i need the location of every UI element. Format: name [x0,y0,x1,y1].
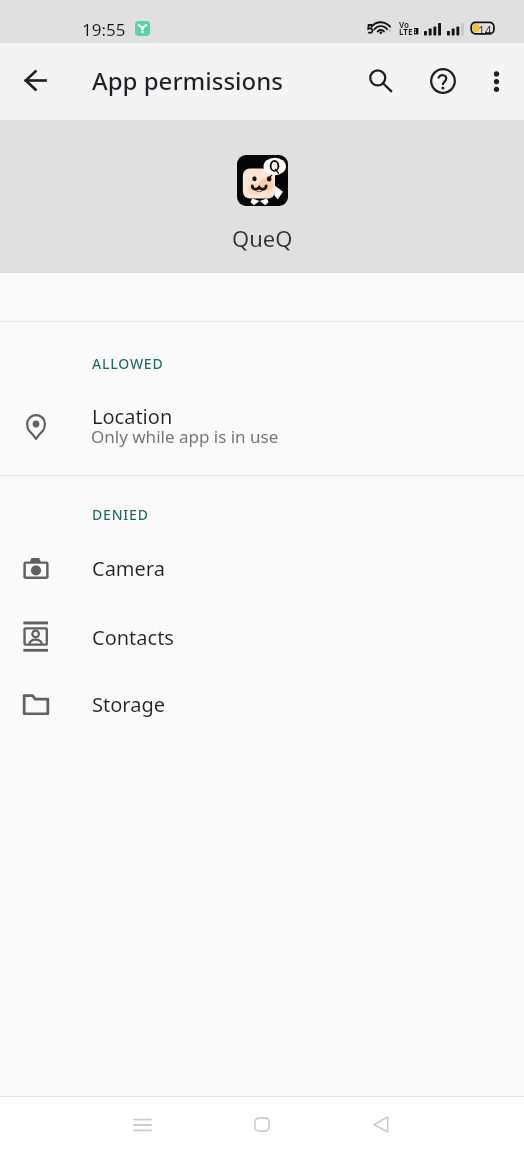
button[interactable]: Home [231,1097,293,1152]
button[interactable]: Storage [0,670,524,738]
staticText: QueQ [232,223,293,253]
staticText: ALLOWED [92,354,164,373]
button[interactable]: More options [470,54,523,107]
button[interactable]: Location [0,380,524,460]
staticText: DENIED [92,505,149,524]
staticText: Storage [92,691,165,718]
button[interactable]: Search [354,54,407,107]
button[interactable]: Navigate up [9,54,62,107]
staticText: App permissions [92,64,283,97]
staticText: Vo [399,19,410,30]
button[interactable]: Camera [0,534,524,602]
staticText: Contacts [92,624,174,651]
staticText: 14 [478,22,492,38]
staticText: Only while app is in use [91,425,279,448]
staticText: 19:55 [82,18,126,41]
staticText: Location [92,403,173,430]
staticText: Camera [92,555,165,582]
button[interactable]: Contacts [0,603,524,671]
staticText: LTE [399,26,413,37]
button[interactable]: Help [416,54,469,107]
button[interactable]: Back [350,1097,412,1152]
button[interactable]: Recent apps [111,1097,173,1152]
